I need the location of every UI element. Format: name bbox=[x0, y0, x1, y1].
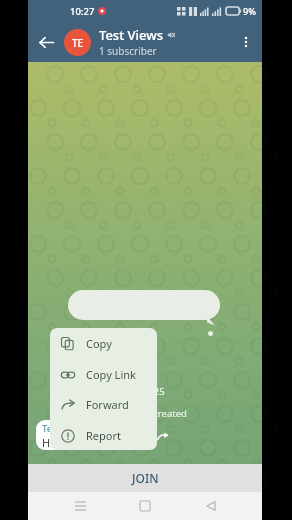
staticText: Test Views bbox=[99, 26, 164, 44]
button[interactable] bbox=[68, 290, 220, 320]
staticText: Hello bbox=[42, 435, 69, 450]
button[interactable]: Recents bbox=[66, 492, 94, 520]
staticText: 3 10:23 PM bbox=[88, 438, 129, 448]
staticText: JOIN bbox=[132, 470, 159, 486]
staticText: 1 subscriber bbox=[99, 44, 157, 58]
button[interactable]: Copy Link bbox=[50, 359, 157, 389]
staticText: Report bbox=[86, 428, 121, 443]
button[interactable]: Copy bbox=[50, 328, 157, 358]
button[interactable]: Test Views bbox=[36, 420, 153, 450]
button[interactable]: Back bbox=[197, 492, 225, 520]
staticText: 9% bbox=[243, 5, 256, 17]
button[interactable]: Back bbox=[28, 24, 64, 60]
staticText: June 25 bbox=[131, 385, 165, 398]
button[interactable]: Report bbox=[50, 420, 157, 450]
staticText: Copy Link bbox=[86, 367, 136, 382]
staticText: Channel created bbox=[114, 407, 187, 420]
button[interactable]: More options bbox=[230, 26, 262, 58]
staticText: Copy bbox=[86, 336, 112, 351]
staticText: TE bbox=[72, 36, 84, 50]
staticText: Forward bbox=[86, 397, 129, 412]
button[interactable]: TE bbox=[64, 26, 230, 58]
button[interactable]: Home bbox=[131, 492, 159, 520]
button[interactable]: Share bbox=[154, 428, 172, 446]
staticText: 10:27 bbox=[70, 5, 95, 18]
button[interactable]: Forward bbox=[50, 389, 157, 419]
button[interactable]: JOIN bbox=[28, 464, 262, 492]
staticText: Test Views bbox=[42, 422, 89, 435]
